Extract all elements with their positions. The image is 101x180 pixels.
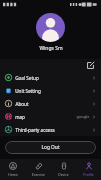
staticText: Log Out (41, 144, 60, 151)
staticText: Goal Setup (15, 75, 39, 81)
button[interactable]: map (0, 110, 101, 123)
staticText: google (76, 114, 90, 119)
button[interactable]: Goal Setup (0, 71, 101, 84)
button[interactable]: Unit Setting (0, 84, 101, 97)
staticText: Home (8, 172, 18, 177)
button[interactable]: Edit profile (85, 60, 96, 71)
button[interactable]: Home (0, 159, 26, 180)
staticText: Profile (83, 172, 94, 177)
button[interactable]: Log Out (5, 141, 96, 154)
staticText: Wings Sm (39, 45, 63, 52)
button[interactable]: Third-party access (0, 123, 101, 136)
staticText: Third-party access (15, 127, 55, 133)
button[interactable]: About (0, 97, 101, 110)
staticText: Device (58, 172, 69, 177)
button[interactable]: Profile avatar (36, 13, 65, 42)
button[interactable]: Device (51, 159, 76, 180)
staticText: About (15, 101, 29, 107)
staticText: Exercise (32, 172, 45, 177)
staticText: map (15, 114, 25, 120)
staticText: Unit Setting (15, 88, 41, 94)
button[interactable]: Exercise (26, 159, 51, 180)
button[interactable]: Profile (76, 159, 101, 180)
